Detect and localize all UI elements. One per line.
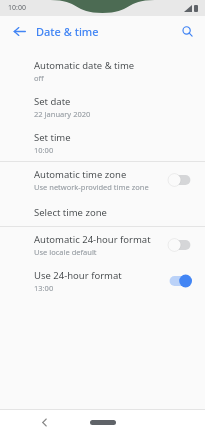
staticText: Set time xyxy=(34,131,71,144)
button[interactable] xyxy=(167,273,193,289)
button[interactable]: Automatic date & time xyxy=(0,53,205,89)
button[interactable]: Search xyxy=(176,20,198,42)
staticText: Automatic date & time xyxy=(34,59,135,72)
staticText: off xyxy=(34,73,44,83)
button[interactable] xyxy=(167,172,193,188)
staticText: Use locale default xyxy=(34,247,97,257)
button[interactable]: Home xyxy=(90,420,116,425)
button[interactable]: Back xyxy=(8,20,30,42)
staticText: 10:00 xyxy=(34,145,54,155)
staticText: 13:00 xyxy=(34,283,54,293)
button[interactable]: Use 24-hour format xyxy=(0,263,205,299)
staticText: 22 January 2020 xyxy=(34,109,91,119)
staticText: Date & time xyxy=(36,24,99,39)
staticText: Automatic time zone xyxy=(34,168,127,181)
button[interactable]: Automatic 24-hour format xyxy=(0,227,205,263)
button[interactable]: Automatic time zone xyxy=(0,162,205,198)
button[interactable]: Set time xyxy=(0,125,205,161)
staticText: Use 24-hour format xyxy=(34,269,122,282)
button[interactable]: Select time zone xyxy=(0,198,205,226)
staticText: Use network-provided time zone xyxy=(34,182,149,192)
staticText: 10:00 xyxy=(8,3,26,13)
staticText: Select time zone xyxy=(34,206,107,219)
staticText: Set date xyxy=(34,95,71,108)
button[interactable]: Back xyxy=(36,414,52,430)
button[interactable]: Set date xyxy=(0,89,205,125)
button[interactable] xyxy=(167,237,193,253)
staticText: Automatic 24-hour format xyxy=(34,233,151,246)
